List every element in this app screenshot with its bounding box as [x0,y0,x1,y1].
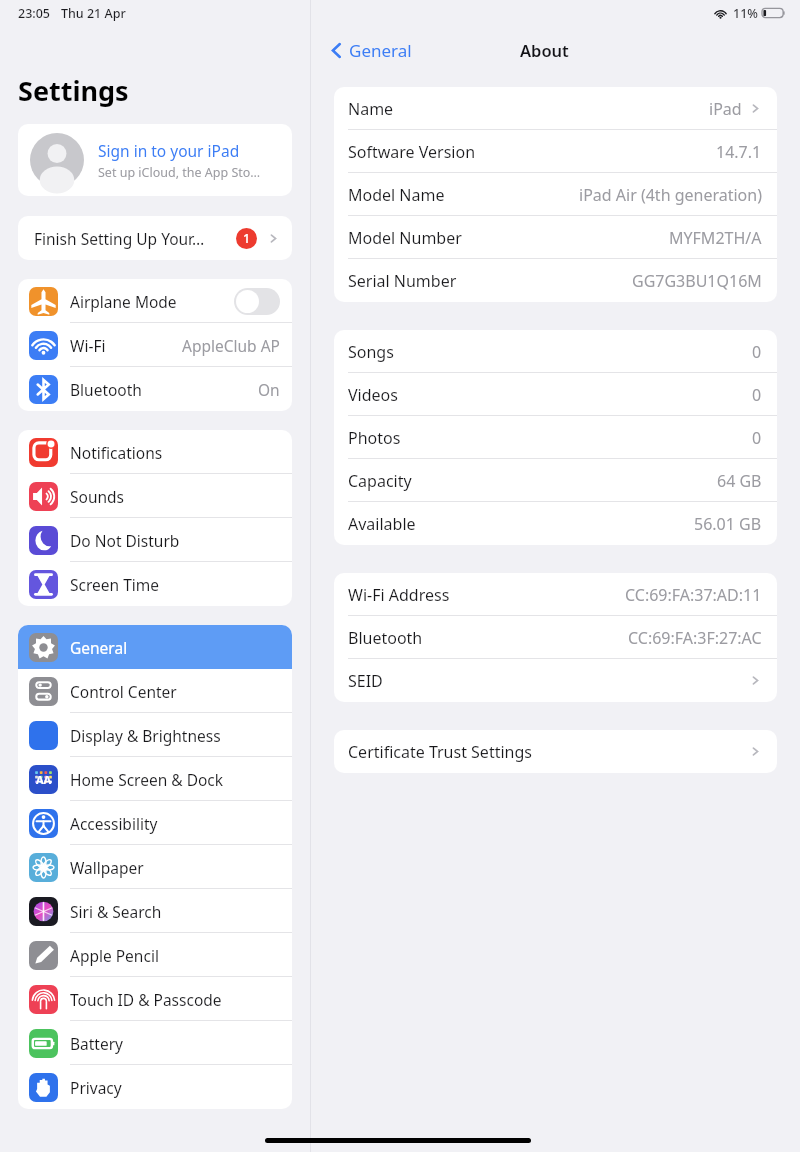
staticText: Bluetooth [348,627,423,649]
button[interactable]: Battery [18,1021,292,1065]
button[interactable]: Videos [334,373,777,416]
button[interactable]: SEID [334,659,777,702]
staticText: Set up iCloud, the App Sto… [98,164,261,181]
staticText: Battery [70,1033,124,1054]
staticText: Videos [348,384,398,406]
staticText: Apple Pencil [70,945,159,966]
button[interactable]: General [18,625,292,669]
staticText: CC:69:FA:3F:27:AC [628,627,762,649]
staticText: Thu 21 Apr [61,5,126,22]
button[interactable]: Name [334,87,777,130]
button[interactable]: Do Not Disturb [18,518,292,562]
button[interactable]: Wallpaper [18,845,292,889]
staticText: Notifications [70,442,163,463]
staticText: 14.7.1 [716,141,762,163]
staticText: Control Center [70,681,177,702]
staticText: 1 [243,230,251,247]
staticText: Wi-Fi Address [348,584,450,606]
staticText: GG7G3BU1Q16M [632,270,762,292]
staticText: Finish Setting Up Your… [34,228,236,249]
staticText: General [70,637,128,658]
staticText: iPad [709,98,742,120]
staticText: Home Screen & Dock [70,769,224,790]
staticText: Available [348,513,416,535]
staticText: Wallpaper [70,857,144,878]
button[interactable]: Siri & Search [18,889,292,933]
staticText: 64 GB [717,470,762,492]
button[interactable]: Wi-Fi Address [334,573,777,616]
staticText: Serial Number [348,270,457,292]
button[interactable]: Bluetooth [18,367,292,411]
button[interactable]: General [325,35,416,66]
button[interactable]: Control Center [18,669,292,713]
staticText: Software Version [348,141,476,163]
button[interactable]: Airplane Mode [18,279,292,323]
staticText: Bluetooth [70,379,142,400]
button[interactable]: Notifications [18,430,292,474]
staticText: AppleClub AP [182,335,280,356]
staticText: 0 [752,427,762,449]
button[interactable]: Sounds [18,474,292,518]
button[interactable]: Screen Time [18,562,292,606]
button[interactable]: Airplane Mode toggle [234,288,280,315]
staticText: Model Name [348,184,445,206]
staticText: CC:69:FA:37:AD:11 [625,584,762,606]
button[interactable]: Wi-Fi [18,323,292,367]
button[interactable]: Home Screen & Dock [18,757,292,801]
button[interactable]: Touch ID & Passcode [18,977,292,1021]
button[interactable]: Songs [334,330,777,373]
staticText: Display & Brightness [70,725,221,746]
button[interactable]: Photos [334,416,777,459]
staticText: Photos [348,427,401,449]
staticText: Sounds [70,486,125,507]
staticText: Privacy [70,1077,122,1098]
button[interactable]: Model Name [334,173,777,216]
staticText: Do Not Disturb [70,530,180,551]
staticText: About [520,39,569,61]
staticText: MYFM2TH/A [669,227,762,249]
staticText: Touch ID & Passcode [70,989,222,1010]
staticText: iPad Air (4th generation) [579,184,762,206]
staticText: Certificate Trust Settings [348,741,532,763]
button[interactable]: Apple Pencil [18,933,292,977]
staticText: Model Number [348,227,462,249]
staticText: Songs [348,341,394,363]
button[interactable]: Available [334,502,777,545]
staticText: 56.01 GB [694,513,762,535]
staticText: Screen Time [70,574,159,595]
button[interactable]: Privacy [18,1065,292,1109]
staticText: Accessibility [70,813,158,834]
staticText: Settings [18,72,129,109]
button[interactable]: Serial Number [334,259,777,302]
button[interactable]: Accessibility [18,801,292,845]
staticText: Airplane Mode [70,291,177,312]
staticText: 0 [752,384,762,406]
button[interactable]: Bluetooth [334,616,777,659]
staticText: AA [36,772,52,787]
staticText: Name [348,98,394,120]
staticText: 0 [752,341,762,363]
staticText: 23:05 [18,5,51,22]
button[interactable]: Finish Setting Up Your… [18,216,292,260]
staticText: Sign in to your iPad [98,140,240,161]
button[interactable]: Certificate Trust Settings [334,730,777,773]
button[interactable]: Software Version [334,130,777,173]
button[interactable]: Sign in to your iPad [18,124,292,196]
staticText: General [349,39,412,62]
button[interactable]: Capacity [334,459,777,502]
staticText: SEID [348,670,383,692]
button[interactable]: Model Number [334,216,777,259]
staticText: Siri & Search [70,901,162,922]
staticText: Capacity [348,470,412,492]
staticText: Wi-Fi [70,335,106,356]
button[interactable]: Display & Brightness [18,713,292,757]
staticText: 11% [733,5,758,22]
staticText: On [258,379,280,400]
